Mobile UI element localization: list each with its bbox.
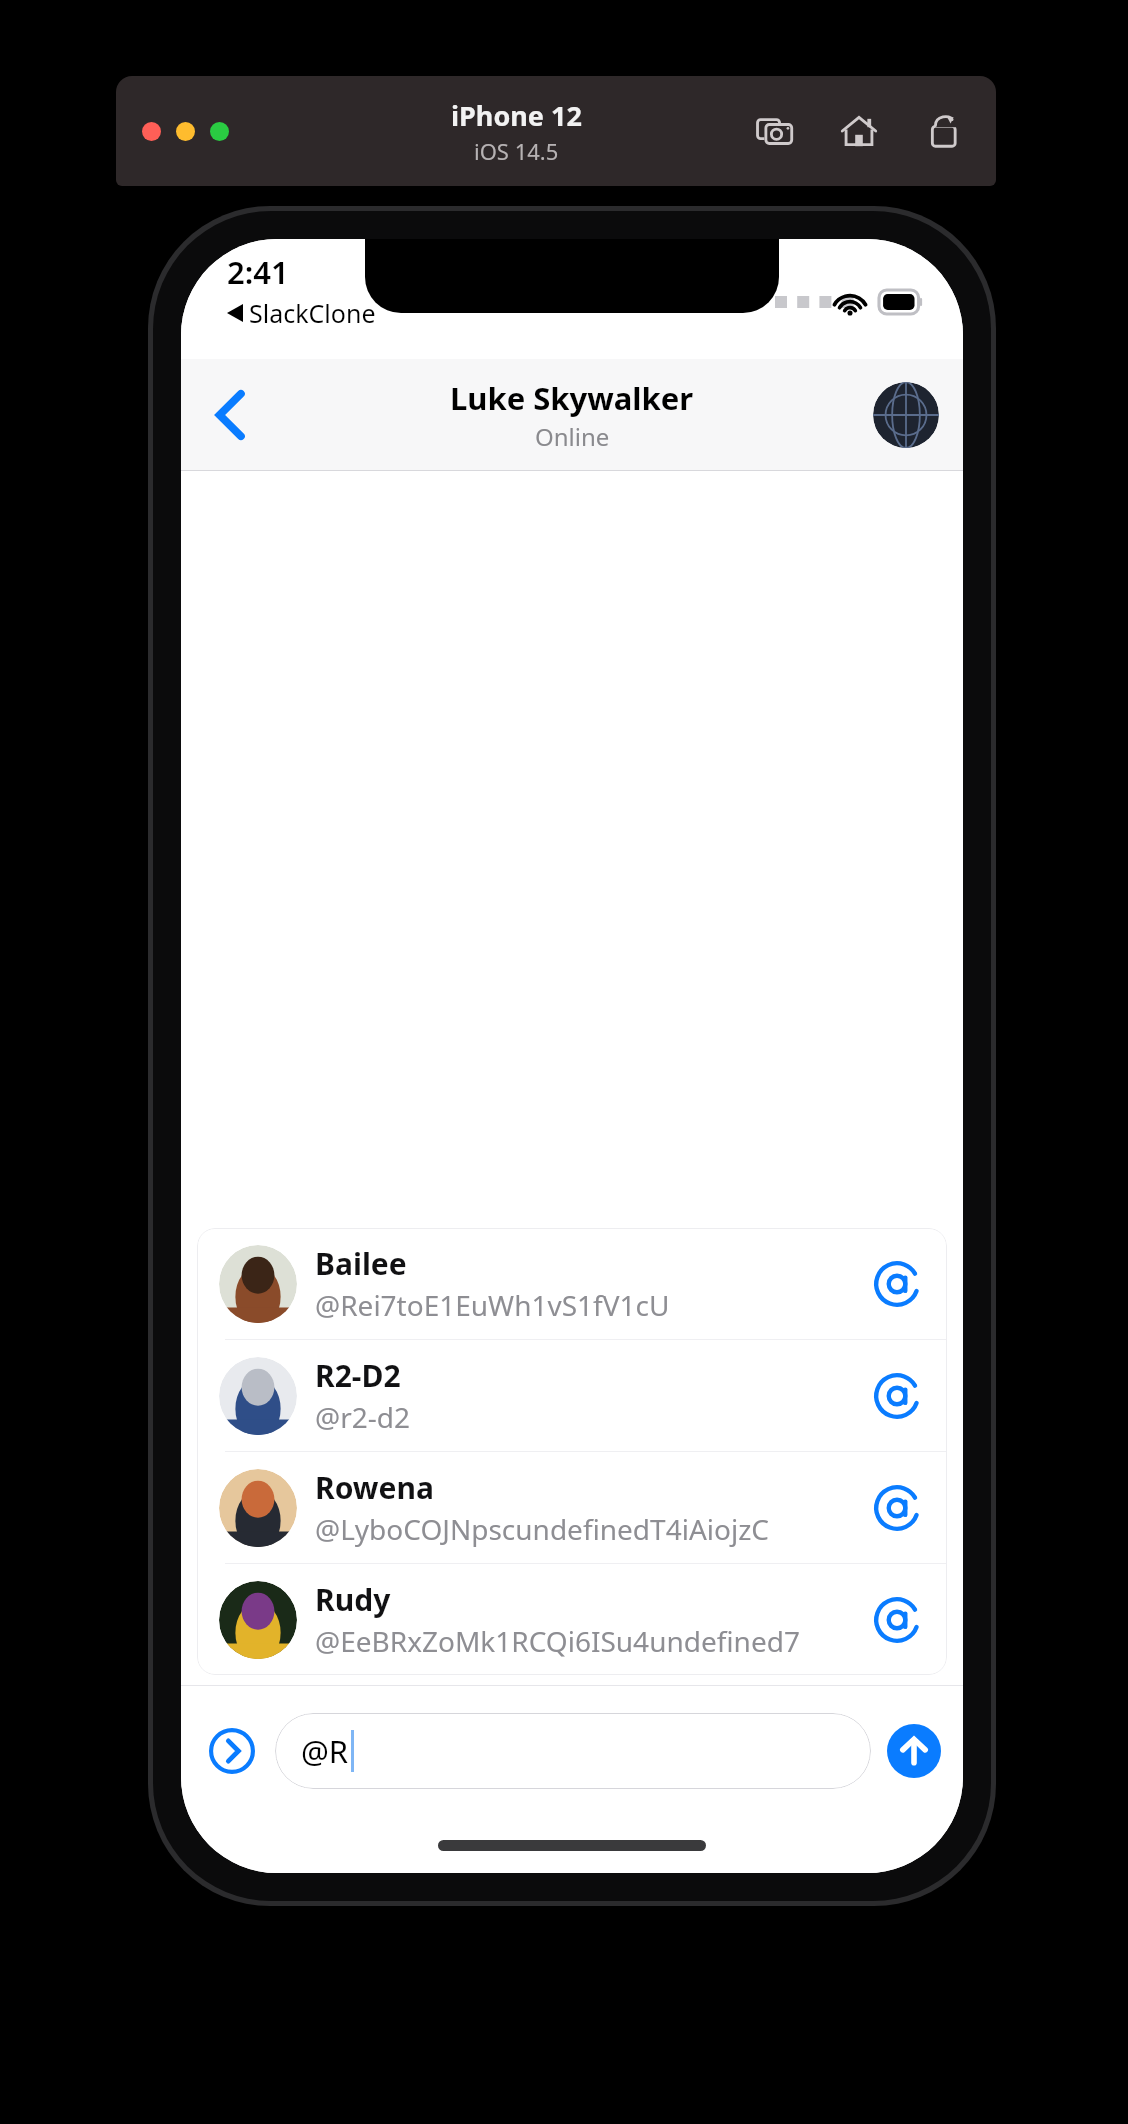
button[interactable]: Rowena xyxy=(197,1452,947,1563)
staticText: R2-D2 xyxy=(315,1355,401,1396)
staticText: @r2-d2 xyxy=(315,1398,411,1436)
button[interactable]: Profile xyxy=(873,382,939,448)
staticText: SlackClone xyxy=(249,296,376,330)
button[interactable]: Mention Bailee xyxy=(869,1256,925,1312)
button[interactable]: Rotate xyxy=(920,108,966,154)
button[interactable]: @R xyxy=(275,1713,871,1789)
staticText: Online xyxy=(535,420,610,453)
button[interactable]: Send xyxy=(887,1724,941,1778)
button[interactable]: Back xyxy=(199,384,261,446)
button[interactable] xyxy=(142,122,161,141)
button[interactable]: Mention R2-D2 xyxy=(869,1368,925,1424)
staticText: @Rei7toE1EuWh1vS1fV1cU xyxy=(315,1286,670,1324)
button[interactable]: Mention Rudy xyxy=(869,1592,925,1648)
button[interactable]: Screenshot xyxy=(752,108,798,154)
staticText: Rudy xyxy=(315,1579,391,1620)
staticText: 2:41 xyxy=(227,251,289,293)
button[interactable]: Mention Rowena xyxy=(869,1480,925,1536)
staticText: @LyboCOJNpscundefinedT4iAiojzC xyxy=(315,1510,770,1548)
staticText: iOS 14.5 xyxy=(474,136,559,166)
staticText: Bailee xyxy=(315,1243,407,1284)
button[interactable]: R2-D2 xyxy=(197,1340,947,1451)
button[interactable]: Bailee xyxy=(197,1228,947,1339)
staticText: Rowena xyxy=(315,1467,434,1508)
button[interactable]: Rudy xyxy=(197,1564,947,1675)
staticText: iPhone 12 xyxy=(451,97,582,134)
button[interactable] xyxy=(176,122,195,141)
staticText: @EeBRxZoMk1RCQi6ISu4undefined7 xyxy=(315,1622,800,1660)
staticText: @R xyxy=(301,1730,349,1772)
button[interactable]: Home xyxy=(836,108,882,154)
button[interactable] xyxy=(210,122,229,141)
staticText: Luke Skywalker xyxy=(450,377,694,419)
button[interactable]: More actions xyxy=(203,1722,261,1780)
